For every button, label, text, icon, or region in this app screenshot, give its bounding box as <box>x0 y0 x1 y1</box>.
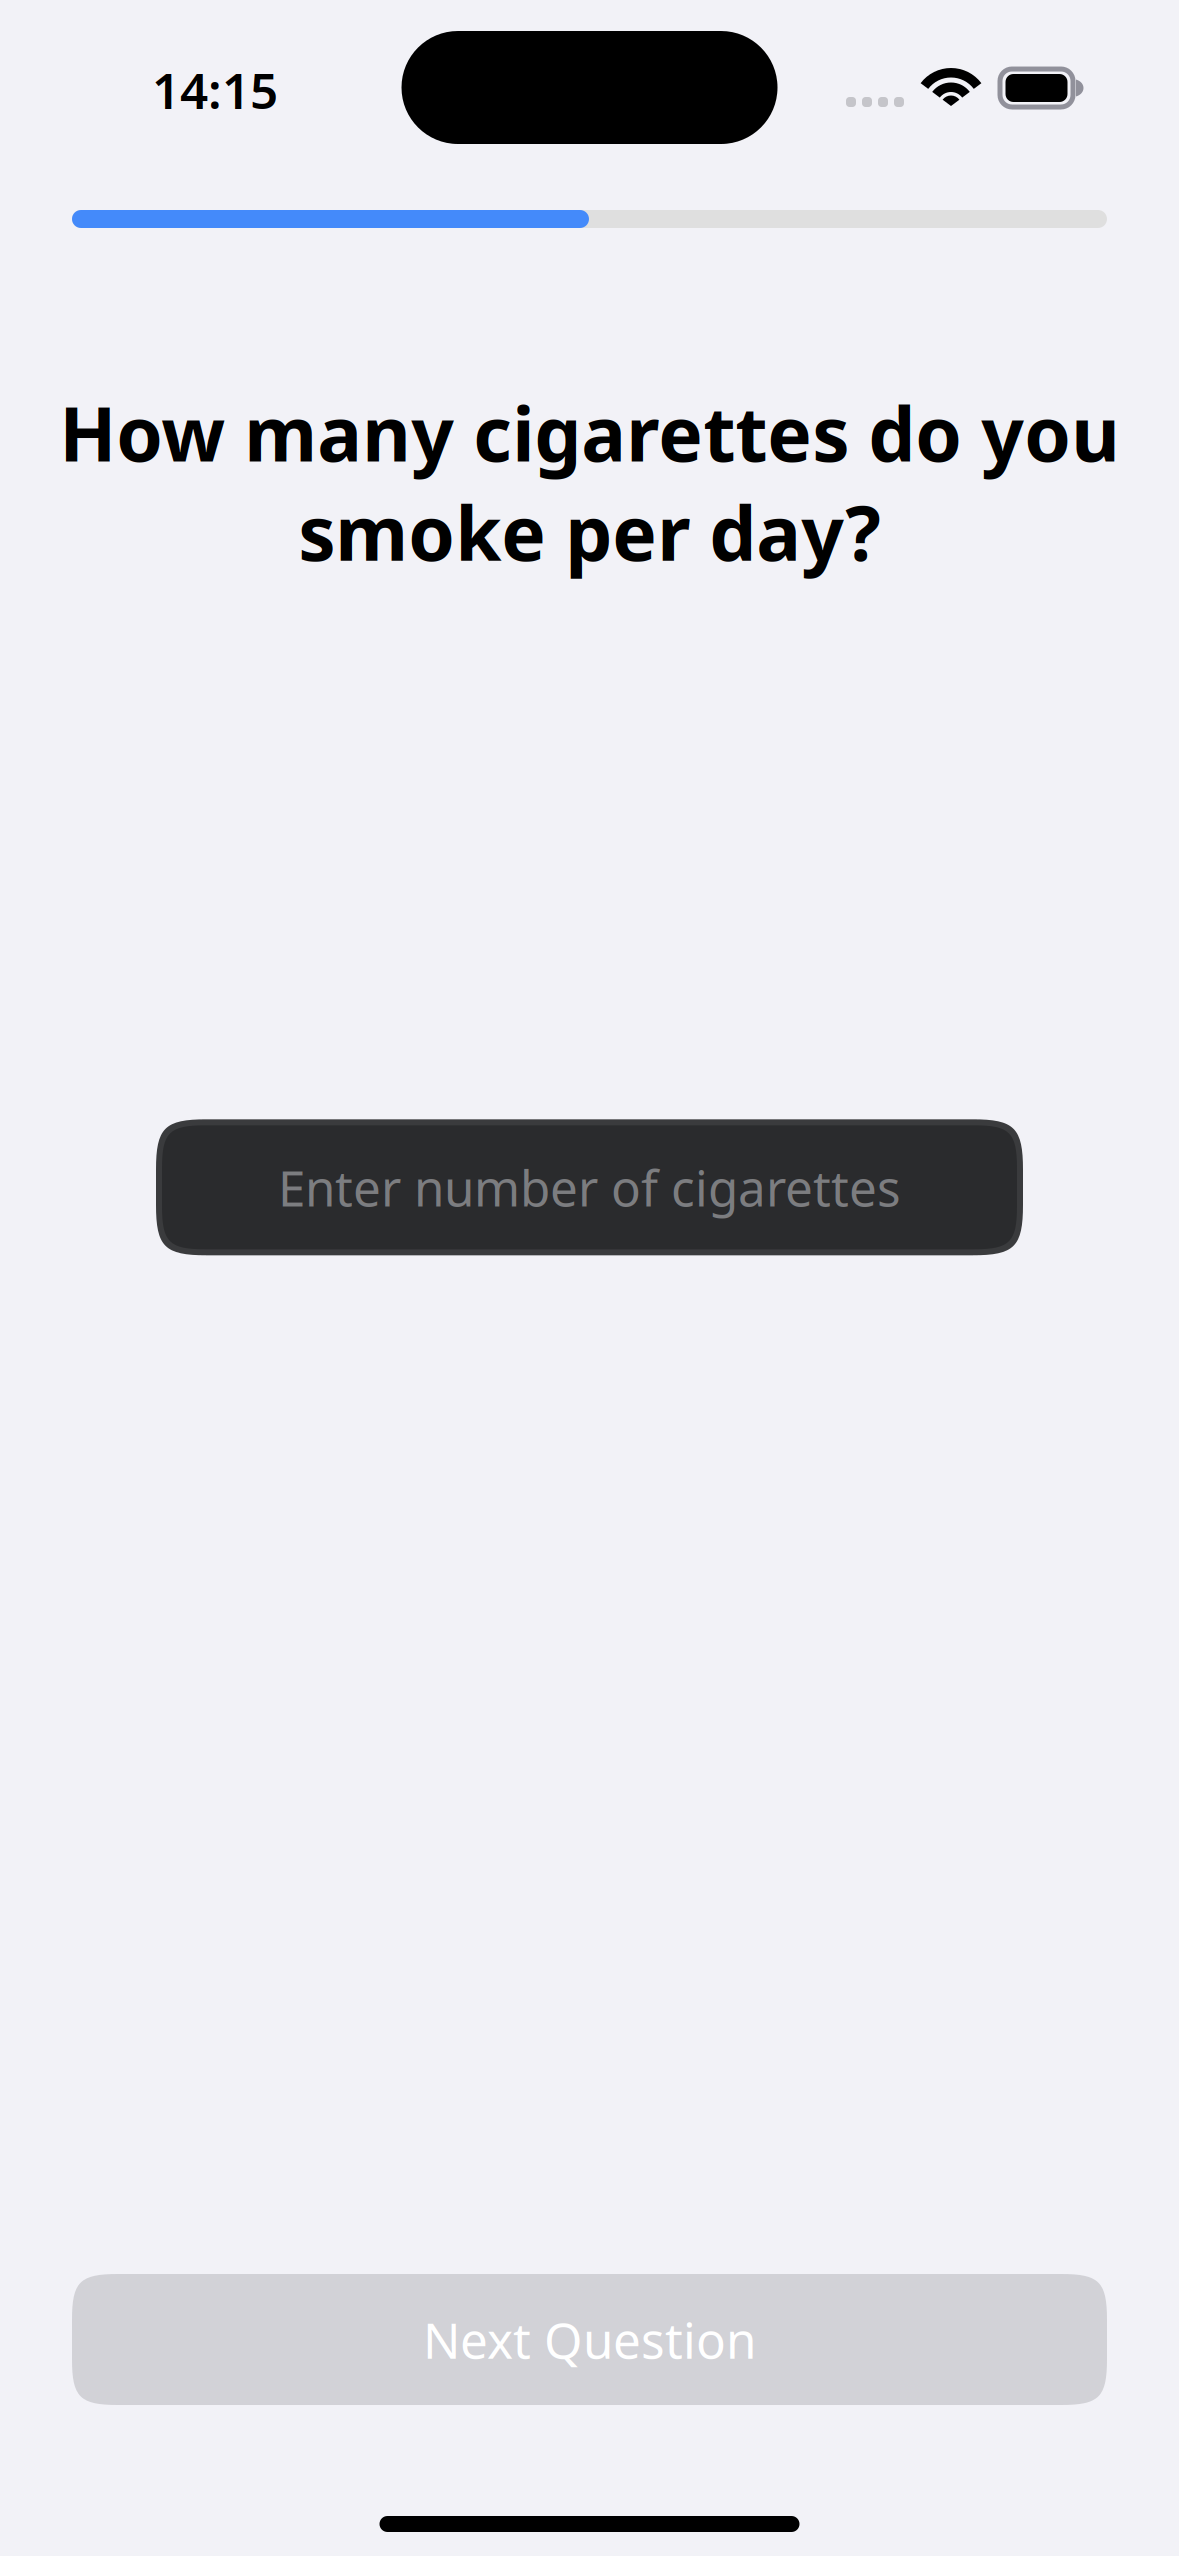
staticText: Next Question <box>423 2307 756 2372</box>
staticText: How many cigarettes do you smoke per day… <box>59 383 1120 581</box>
button[interactable]: Next Question <box>0 2274 1179 2405</box>
staticText: 14:15 <box>152 57 278 122</box>
staticText: Enter number of cigarettes <box>278 1155 901 1220</box>
button[interactable]: Enter number of cigarettes <box>156 1119 1023 1255</box>
